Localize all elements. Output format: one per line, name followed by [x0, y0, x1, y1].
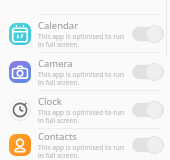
staticText: This app is optimised to run in full scr… — [38, 32, 128, 49]
staticText: Calendar — [38, 19, 79, 32]
staticText: This app is optimised to run in full scr… — [38, 70, 128, 87]
button[interactable]: Clock — [0, 91, 170, 128]
staticText: This app is optimised to run in full scr… — [38, 143, 128, 160]
button[interactable]: Camera — [0, 53, 170, 90]
button[interactable]: Toggle full screen — [132, 101, 164, 119]
staticText: Camera — [38, 57, 73, 70]
button[interactable]: Toggle full screen — [132, 136, 164, 154]
staticText: Clock — [38, 95, 62, 108]
button[interactable]: Calendar — [0, 15, 170, 52]
button[interactable]: Contacts — [0, 129, 170, 160]
button[interactable]: Toggle full screen — [132, 25, 164, 43]
button[interactable]: Toggle full screen — [132, 63, 164, 81]
staticText: Contacts — [38, 130, 77, 143]
staticText: This app is optimised to run in full scr… — [38, 108, 128, 125]
